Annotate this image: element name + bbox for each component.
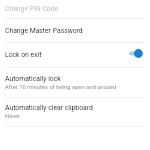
button[interactable]: Lock on exit <box>0 43 150 67</box>
staticText: After 10 minutes of being open and unuse… <box>5 84 117 91</box>
staticText: Lock on exit <box>5 51 42 59</box>
staticText: Automatically clear clipboard <box>5 104 93 112</box>
staticText: Change Master Password <box>5 27 83 35</box>
button[interactable]: Change PIN Code <box>0 0 150 18</box>
staticText: Change PIN Code <box>5 5 59 13</box>
staticText: Automatically lock <box>5 75 61 83</box>
button[interactable]: Automatically lock <box>0 68 150 97</box>
button[interactable]: Automatically clear clipboard <box>0 98 150 126</box>
button[interactable]: Change Master Password <box>0 19 150 42</box>
staticText: Never <box>5 113 20 120</box>
button[interactable]: Lock on exit <box>129 48 145 62</box>
